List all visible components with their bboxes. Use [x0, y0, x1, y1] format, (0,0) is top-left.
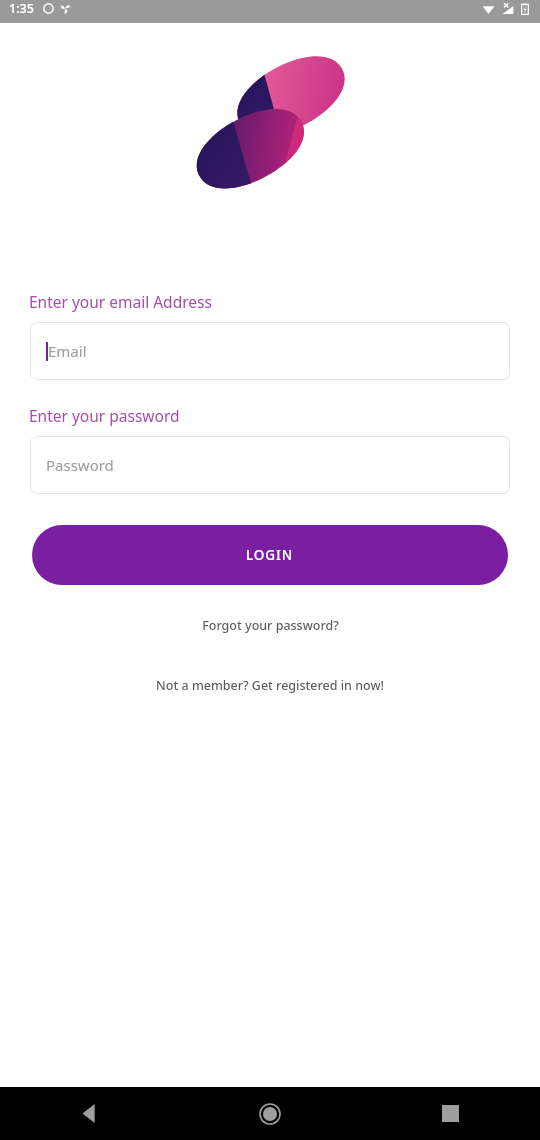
button[interactable]: Email — [30, 322, 510, 380]
button[interactable]: Recent apps — [360, 1087, 540, 1140]
button[interactable]: Forgot your password? — [0, 617, 540, 634]
button[interactable]: Home — [180, 1087, 360, 1140]
staticText: Password — [46, 455, 114, 475]
staticText: LOGIN — [246, 546, 294, 564]
button[interactable]: Password — [30, 436, 510, 494]
staticText: Not a member? Get registered in now! — [156, 677, 384, 694]
button[interactable]: Not a member? Get registered in now! — [0, 677, 540, 694]
button[interactable]: Back — [0, 1087, 180, 1140]
button[interactable]: LOGIN — [32, 525, 508, 585]
staticText: Enter your password — [29, 405, 180, 426]
staticText: Forgot your password? — [202, 617, 339, 634]
staticText: 1:35 — [9, 0, 34, 17]
staticText: Email — [48, 341, 87, 361]
staticText: Enter your email Address — [29, 291, 212, 312]
